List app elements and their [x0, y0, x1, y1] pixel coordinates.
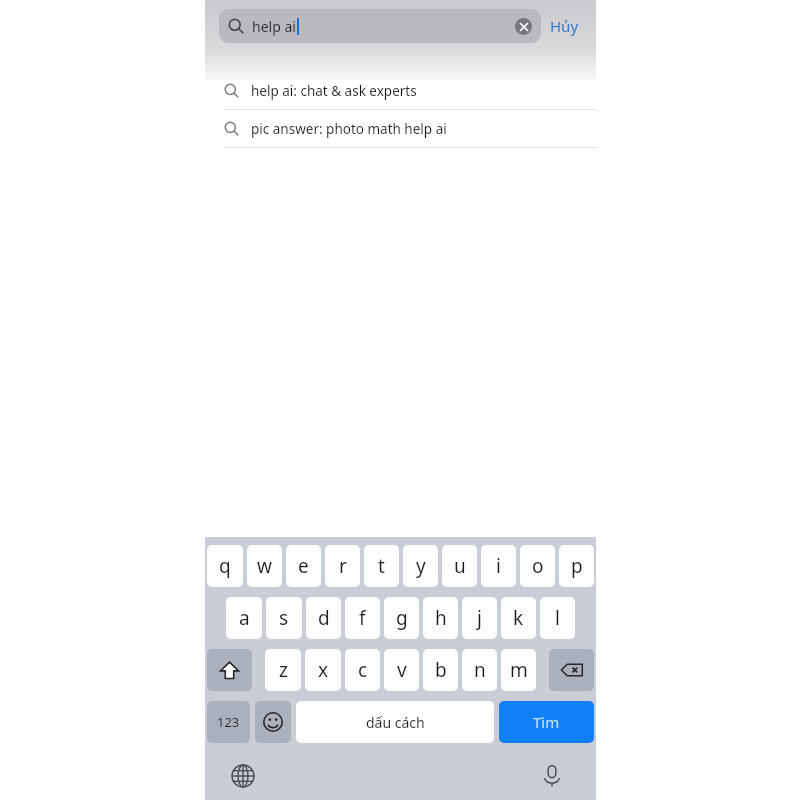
staticText: j	[477, 605, 482, 631]
button[interactable]: n	[462, 649, 497, 691]
button[interactable]: j	[462, 597, 497, 639]
button[interactable]: a	[226, 597, 262, 639]
button[interactable]: u	[442, 545, 477, 587]
button[interactable]: Backspace	[549, 649, 594, 691]
staticText: p	[571, 553, 583, 579]
button[interactable]: b	[423, 649, 458, 691]
button[interactable]: w	[247, 545, 282, 587]
button[interactable]: t	[364, 545, 399, 587]
staticText: 123	[217, 713, 240, 731]
staticText: h	[435, 605, 447, 631]
button[interactable]: r	[325, 545, 360, 587]
staticText: Hủy	[550, 16, 579, 36]
staticText: help ai	[252, 17, 296, 36]
button[interactable]: help ai	[219, 9, 541, 43]
staticText: pic answer: photo math help ai	[251, 120, 447, 138]
staticText: w	[257, 553, 272, 579]
button[interactable]: Shift	[207, 649, 252, 691]
button[interactable]: d	[306, 597, 341, 639]
staticText: u	[454, 553, 466, 579]
button[interactable]: y	[403, 545, 438, 587]
staticText: c	[358, 657, 368, 683]
staticText: d	[318, 605, 330, 631]
button[interactable]: Dictation	[535, 759, 569, 793]
staticText: t	[378, 553, 385, 579]
staticText: l	[555, 605, 560, 631]
staticText: i	[496, 553, 501, 579]
staticText: dấu cách	[366, 713, 425, 732]
button[interactable]: pic answer: photo math help ai	[205, 110, 596, 148]
staticText: b	[435, 657, 447, 683]
button[interactable]: v	[384, 649, 419, 691]
button[interactable]: c	[345, 649, 380, 691]
button[interactable]: z	[265, 649, 301, 691]
staticText: k	[513, 605, 524, 631]
staticText: f	[359, 605, 366, 631]
staticText: g	[396, 605, 408, 631]
button[interactable]: Tìm	[499, 701, 594, 743]
button[interactable]: dấu cách	[296, 701, 494, 743]
staticText: n	[474, 657, 486, 683]
staticText: a	[239, 605, 250, 631]
staticText: q	[219, 553, 231, 579]
staticText: z	[279, 657, 288, 683]
button[interactable]: s	[266, 597, 302, 639]
button[interactable]: o	[520, 545, 555, 587]
button[interactable]: i	[481, 545, 516, 587]
button[interactable]: Change keyboard language	[226, 759, 260, 793]
staticText: x	[318, 657, 329, 683]
button[interactable]: help ai: chat & ask experts	[205, 72, 596, 110]
button[interactable]: Emoji	[255, 701, 291, 743]
staticText: e	[298, 553, 309, 579]
staticText: help ai: chat & ask experts	[251, 82, 417, 100]
button[interactable]: x	[305, 649, 341, 691]
staticText: m	[510, 657, 528, 683]
button[interactable]: Clear text	[515, 18, 532, 35]
button[interactable]: g	[384, 597, 419, 639]
staticText: r	[339, 553, 347, 579]
button[interactable]: f	[345, 597, 380, 639]
button[interactable]: k	[501, 597, 536, 639]
staticText: Tìm	[533, 712, 560, 732]
button[interactable]: m	[501, 649, 536, 691]
button[interactable]: q	[207, 545, 243, 587]
button[interactable]: l	[540, 597, 575, 639]
staticText: o	[532, 553, 544, 579]
button[interactable]: 123	[207, 701, 250, 743]
button[interactable]: h	[423, 597, 458, 639]
staticText: y	[416, 553, 426, 579]
button[interactable]: p	[559, 545, 594, 587]
staticText: v	[397, 657, 407, 683]
button[interactable]: Hủy	[541, 9, 588, 43]
button[interactable]: e	[286, 545, 321, 587]
staticText: s	[279, 605, 289, 631]
